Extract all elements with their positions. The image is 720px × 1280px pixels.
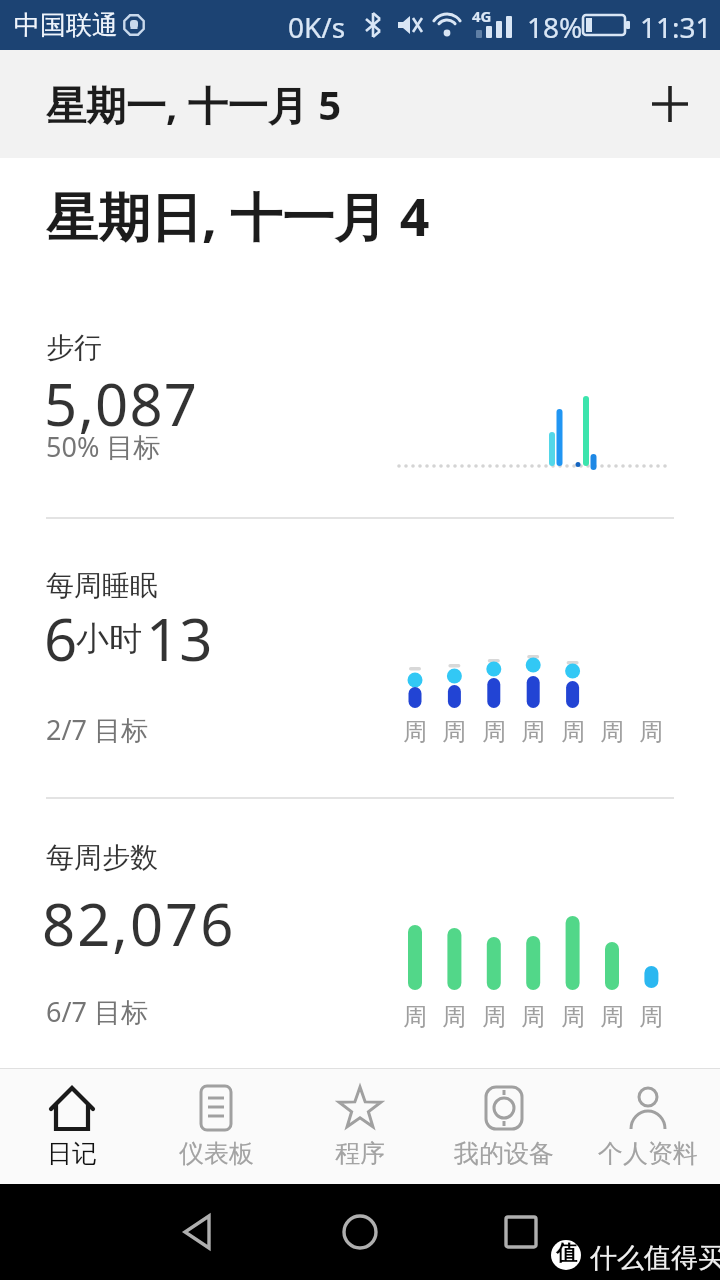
staticText: 11:31	[640, 8, 712, 46]
staticText: 周	[600, 1002, 624, 1032]
staticText: 星期一, 十一月 5	[46, 77, 342, 132]
staticText: 周	[600, 717, 624, 747]
staticText: 13	[146, 599, 213, 678]
button[interactable]: 仪表板	[144, 1068, 288, 1184]
staticText: 周	[403, 1002, 427, 1032]
button[interactable]: 日记	[0, 1068, 144, 1184]
staticText: 周	[561, 717, 585, 747]
staticText: 18%	[527, 8, 583, 46]
button[interactable]	[182, 1214, 218, 1250]
staticText: 中国联通	[14, 9, 118, 42]
staticText: 6	[44, 599, 78, 678]
staticText: 每周睡眠	[46, 568, 158, 603]
staticText: 周	[442, 717, 466, 747]
staticText: 82,076	[42, 884, 236, 963]
staticText: 周	[442, 1002, 466, 1032]
button[interactable]: 程序	[288, 1068, 432, 1184]
staticText: 周	[521, 1002, 545, 1032]
staticText: 星期日, 十一月 4	[46, 180, 430, 251]
staticText: 小时	[76, 618, 142, 660]
staticText: 周	[482, 717, 506, 747]
staticText: 仪表板	[179, 1138, 254, 1169]
staticText: 每周步数	[46, 840, 158, 875]
staticText: 0K/s	[288, 8, 346, 46]
staticText: 周	[521, 717, 545, 747]
staticText: 周	[403, 717, 427, 747]
staticText: 50% 目标	[46, 428, 161, 465]
staticText: 6/7 目标	[46, 993, 148, 1030]
button[interactable]	[504, 1215, 538, 1249]
button[interactable]	[342, 1214, 378, 1250]
staticText: 步行	[46, 330, 102, 365]
staticText: 5,087	[44, 364, 199, 443]
staticText: 周	[561, 1002, 585, 1032]
button[interactable]: 我的设备	[432, 1068, 576, 1184]
staticText: 程序	[335, 1138, 385, 1169]
staticText: 日记	[47, 1138, 97, 1169]
staticText: 周	[639, 1002, 663, 1032]
staticText: 什么值得买	[590, 1241, 720, 1275]
staticText: 2/7 目标	[46, 711, 148, 748]
staticText: 周	[482, 1002, 506, 1032]
button[interactable]	[650, 84, 690, 124]
staticText: 4G	[472, 6, 492, 26]
staticText: 个人资料	[598, 1138, 698, 1169]
button[interactable]: 个人资料	[576, 1068, 720, 1184]
staticText: 周	[639, 717, 663, 747]
staticText: 值	[556, 1240, 577, 1266]
staticText: 我的设备	[454, 1138, 554, 1169]
